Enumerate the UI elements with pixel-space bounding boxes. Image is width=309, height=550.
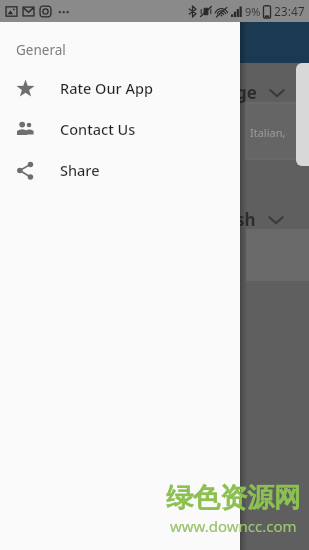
button[interactable]: Share <box>0 149 240 190</box>
staticText: www.downcc.com <box>170 516 297 536</box>
button[interactable]: Rate Our App <box>0 67 240 108</box>
staticText: Italian, <box>250 125 286 140</box>
staticText: ge <box>236 81 257 104</box>
staticText: General <box>16 41 66 59</box>
staticText: Contact Us <box>60 119 136 139</box>
staticText: sh <box>236 208 256 231</box>
staticText: 23:47 <box>274 3 305 19</box>
staticText: Share <box>60 160 100 180</box>
button[interactable]: Contact Us <box>0 108 240 149</box>
staticText: 9% <box>245 4 261 19</box>
staticText: 绿色资源网 <box>166 481 301 515</box>
staticText: Rate Our App <box>60 78 153 98</box>
